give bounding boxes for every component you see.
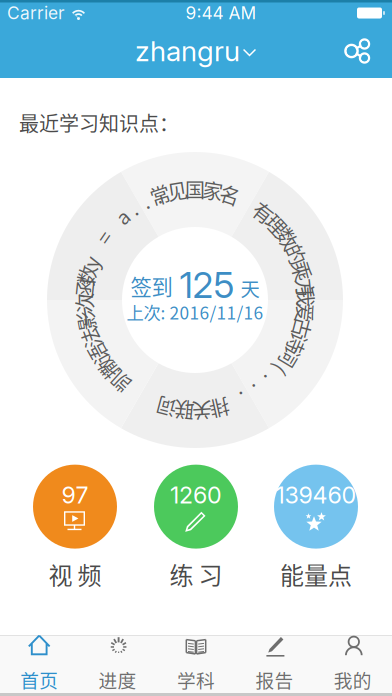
staticText: . [142,186,148,215]
staticText: 常 [150,180,170,209]
staticText: 的 [286,240,306,269]
staticText: 进度 [99,666,137,693]
staticText: 学科 [177,666,215,693]
staticText: 语 [88,339,108,368]
staticText: 数 [277,224,297,253]
staticText: 词 [280,343,300,372]
staticText: 词 [157,393,177,422]
staticText: 国 [185,174,205,203]
button[interactable]: 学科 [157,636,235,693]
staticText: 139460 [275,481,356,509]
staticText: 最近学习知识点： [19,108,179,137]
staticText: = [98,222,109,251]
button[interactable]: 139460 [274,465,358,591]
staticText: 函 [75,274,95,303]
staticText: 凯 [110,367,130,396]
button[interactable]: 97 [33,465,117,591]
staticText: Carrier [7,2,65,23]
staticText: 有 [253,198,273,227]
button[interactable]: 进度 [78,636,157,693]
button[interactable]: Share [327,25,392,76]
staticText: 古 [292,313,312,342]
staticText: 理 [266,210,286,239]
staticText: 乘 [292,256,312,285]
staticText [110,211,114,240]
staticText: 签到 [130,271,172,301]
staticText: 次 [74,288,94,317]
staticText: 报告 [255,666,293,693]
staticText: 见 [167,176,187,205]
staticText: 家 [203,176,223,205]
staticText: 撒 [98,354,118,383]
staticText: 一 [75,302,95,331]
staticText: 名 [220,180,240,209]
button[interactable]: 报告 [235,636,314,693]
staticText: 关 [192,396,212,425]
staticText: 联 [174,396,194,425]
button[interactable]: 首页 [0,636,78,693]
staticText: 法 [81,323,101,352]
staticText: a [117,202,128,231]
staticText: . [255,377,261,406]
staticText: 1260 [170,481,222,509]
staticText: . [155,181,161,210]
staticText: 影 [76,306,96,335]
staticText: 125 [179,263,234,307]
staticText: 天 [240,274,259,302]
staticText: . [130,193,136,222]
staticText: 我的 [334,666,372,693]
button[interactable]: 1260 [154,465,238,591]
staticText: 数 [77,261,97,290]
button[interactable]: zhangru [123,25,269,77]
staticText: 9:44 AM [185,2,256,23]
staticText: 爱 [295,298,315,327]
staticText: y [86,247,96,276]
staticText: zhangru [135,34,240,68]
staticText: 我 [296,282,316,311]
staticText: ( [277,356,284,385]
staticText: 能量点 [280,557,352,591]
staticText: 上次: 2016/11/16 [126,299,263,325]
staticText [94,234,98,263]
staticText: 97 [61,481,88,509]
staticText: . [241,385,247,414]
staticText: 诗 [287,328,307,357]
button[interactable]: 我的 [314,636,392,693]
staticText: 方 [295,274,315,303]
staticText: 练 习 [169,557,222,591]
staticText: 排 [210,394,230,423]
staticText: 首页 [20,666,58,693]
staticText: 视 频 [48,557,101,591]
